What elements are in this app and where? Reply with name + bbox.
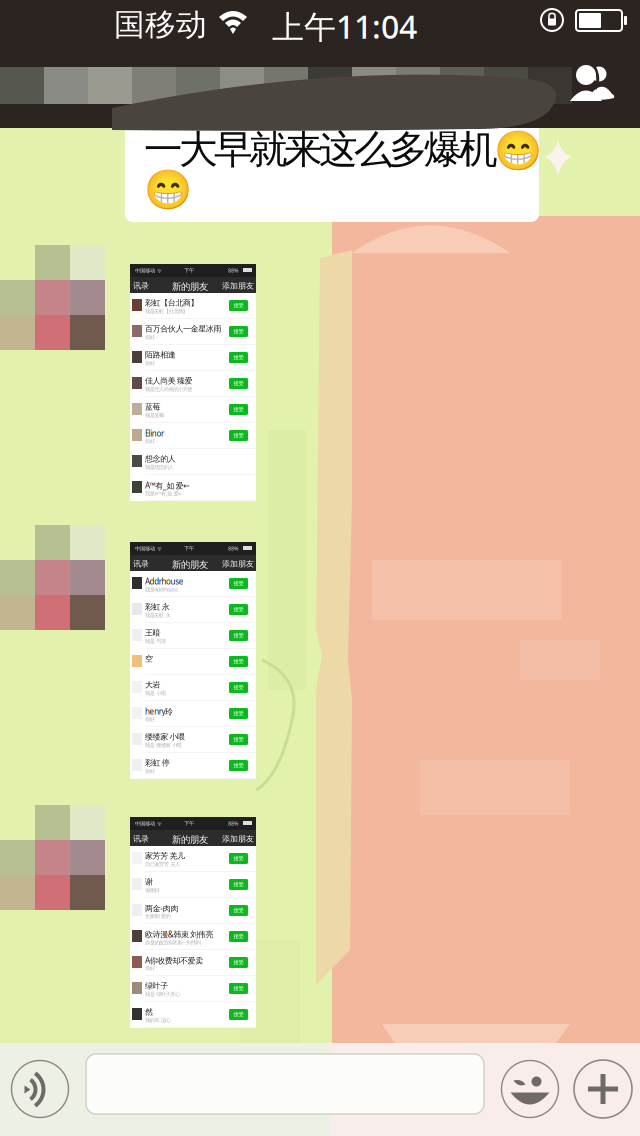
staticText: 中国移动 ᯤ xyxy=(135,820,162,827)
staticText: 接受 xyxy=(233,632,243,639)
staticText: henry玲 xyxy=(145,706,173,717)
staticText: 百万合伙人一金星冰雨 xyxy=(145,324,221,334)
staticText: 接受 xyxy=(233,302,243,309)
staticText: 88% xyxy=(228,820,238,827)
staticText: 接受 xyxy=(233,881,243,888)
staticText: 绿叶子 xyxy=(145,981,168,991)
staticText: 接受 xyxy=(233,710,243,717)
staticText: 谢 xyxy=(145,877,153,887)
staticText: 接受 xyxy=(233,380,243,387)
staticText: 缕缕家 小喂 xyxy=(145,732,185,742)
staticText: 佳人尚美 臻爱 xyxy=(145,376,193,386)
staticText: 彩虹 停 xyxy=(145,758,170,768)
staticText: Elinor xyxy=(145,428,164,439)
staticText: 两金-肉肉 xyxy=(145,903,178,914)
staticText: 谢谢好 xyxy=(145,887,159,894)
staticText: 下午 xyxy=(184,545,194,552)
button[interactable]: Voice message xyxy=(11,1060,69,1118)
staticText: 中国移动 ᯤ xyxy=(135,545,162,552)
staticText: 我是彩虹 永 xyxy=(145,612,170,619)
staticText: 添加朋友 xyxy=(222,834,254,844)
staticText: 你好 xyxy=(145,438,155,445)
staticText: 你好 xyxy=(145,360,155,367)
staticText: 欧诗漫&韩束 刘伟亮 xyxy=(145,929,213,940)
staticText: 讯录 xyxy=(133,559,149,569)
staticText: 我是Addrhouse xyxy=(145,586,178,593)
staticText: 国移动 xyxy=(114,6,207,44)
staticText: 讯录 xyxy=(133,834,149,844)
staticText: 我是A™有_如 爱← xyxy=(145,490,182,497)
staticText: 王暗 xyxy=(145,628,161,638)
staticText: 接受 xyxy=(233,354,243,361)
staticText: 你好 xyxy=(145,716,155,723)
staticText: 新的朋友 xyxy=(172,834,208,845)
staticText: 接受 xyxy=(233,933,243,940)
staticText: 新的朋友 xyxy=(172,559,208,570)
staticText: 一大早就来这么多爆机😁 xyxy=(144,126,542,173)
staticText: 你好 xyxy=(145,334,155,341)
staticText: 中国移动 ᯤ xyxy=(135,267,162,274)
staticText: 家芳芳 羌儿 xyxy=(145,851,185,861)
staticText: 彩虹【台北商】 xyxy=(145,298,199,308)
staticText: 下午 xyxy=(184,267,194,274)
staticText: 我是 缕缕家 小喂 xyxy=(145,742,182,749)
staticText: 想念的人 xyxy=(145,454,176,464)
staticText: 彩虹 永 xyxy=(145,602,170,612)
staticText: 然 xyxy=(145,1007,153,1017)
button[interactable]: More xyxy=(574,1060,632,1118)
staticText: 我是 与清 xyxy=(145,638,166,645)
staticText: 接受 xyxy=(233,855,243,862)
button[interactable]: Emoji xyxy=(501,1060,559,1118)
staticText: 我是 绿叶子开心 xyxy=(145,991,180,998)
staticText: 陌路相逢 xyxy=(145,350,176,360)
staticText: 接受 xyxy=(233,328,243,335)
staticText: 接受 xyxy=(233,762,243,769)
staticText: 接受 xyxy=(233,959,243,966)
staticText: 我是想念的人 xyxy=(145,464,173,471)
staticText: 接受 xyxy=(233,684,243,691)
button[interactable] xyxy=(86,1054,484,1114)
staticText: 我是佳人尚美的小天使 xyxy=(145,386,192,393)
staticText: Addrhouse xyxy=(145,576,184,587)
staticText: 上午11:04 xyxy=(272,5,417,47)
staticText: 你好 xyxy=(145,965,155,972)
staticText: 你好 xyxy=(145,768,155,775)
staticText: 我是蓝莓 xyxy=(145,412,164,419)
staticText: 接受 xyxy=(233,1011,243,1018)
staticText: 我的耳 适心 xyxy=(145,1017,170,1024)
staticText: 接受 xyxy=(233,406,243,413)
staticText: 接受 xyxy=(233,985,243,992)
staticText: 我是 小雨 xyxy=(145,690,166,697)
button[interactable]: Chat details xyxy=(568,63,616,105)
staticText: 接受 xyxy=(233,736,243,743)
staticText: 自己家芳芳 夫人 xyxy=(145,861,180,868)
staticText: 蓝莓 xyxy=(145,402,161,412)
staticText: 新的朋友 xyxy=(172,281,208,292)
staticText: 88% xyxy=(228,267,238,274)
staticText: 😁 xyxy=(144,168,192,212)
staticText: 添加朋友 xyxy=(222,281,254,291)
staticText: 接受 xyxy=(233,580,243,587)
staticText: 我是彩虹【台北商】 xyxy=(145,308,188,315)
staticText: 接受 xyxy=(233,606,243,613)
staticText: 空 xyxy=(145,654,153,664)
staticText: A™有_如 爱← xyxy=(145,480,190,491)
staticText: 接受 xyxy=(233,432,243,439)
staticText: 接受 xyxy=(233,907,243,914)
staticText: 接受 xyxy=(233,658,243,665)
staticText: 你是的故宫&韩束一刘伟利 xyxy=(145,939,201,946)
staticText: 讯录 xyxy=(133,281,149,291)
staticText: A你收费却不爱卖 xyxy=(145,955,203,966)
staticText: 大岩 xyxy=(145,680,161,690)
staticText: 添加朋友 xyxy=(222,559,254,569)
staticText: 88% xyxy=(228,545,238,552)
staticText: 全家期 爱的 xyxy=(145,913,170,920)
staticText: 下午 xyxy=(184,820,194,827)
